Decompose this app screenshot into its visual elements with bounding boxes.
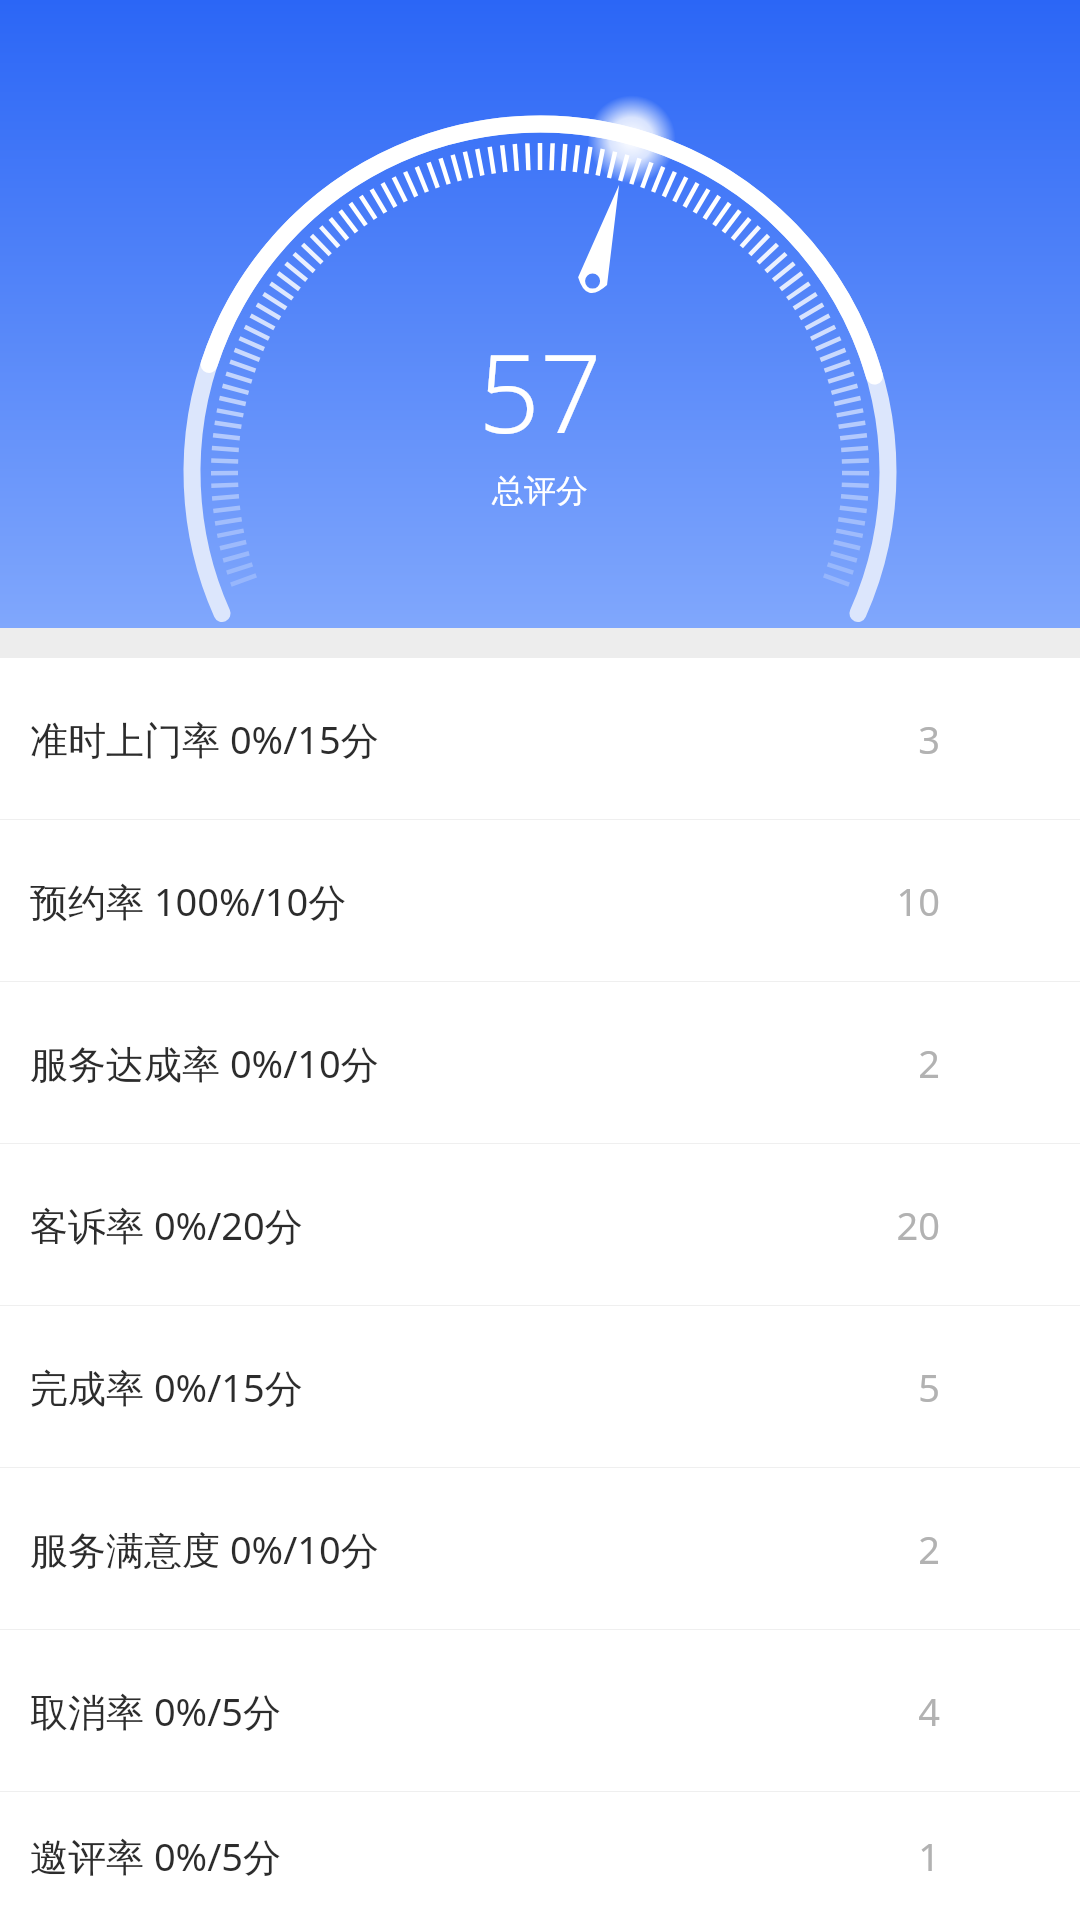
button[interactable]: 服务达成率 0%/10分: [0, 982, 1080, 1143]
button[interactable]: 准时上门率 0%/15分: [0, 658, 1080, 819]
staticText: 服务达成率 0%/10分: [30, 1037, 379, 1089]
staticText: 总评分: [492, 471, 588, 511]
staticText: 2: [918, 1037, 940, 1089]
staticText: 完成率 0%/15分: [30, 1361, 303, 1413]
staticText: 3: [918, 713, 940, 765]
staticText: 2: [918, 1523, 940, 1575]
staticText: 10: [896, 875, 940, 927]
button[interactable]: 取消率 0%/5分: [0, 1630, 1080, 1791]
button[interactable]: 预约率 100%/10分: [0, 820, 1080, 981]
staticText: 邀评率 0%/5分: [30, 1830, 282, 1882]
staticText: 20: [896, 1199, 940, 1251]
button[interactable]: 客诉率 0%/20分: [0, 1144, 1080, 1305]
staticText: 客诉率 0%/20分: [30, 1199, 303, 1251]
staticText: 4: [918, 1685, 940, 1737]
button[interactable]: 服务满意度 0%/10分: [0, 1468, 1080, 1629]
staticText: 服务满意度 0%/10分: [30, 1523, 379, 1575]
button[interactable]: 完成率 0%/15分: [0, 1306, 1080, 1467]
staticText: 预约率 100%/10分: [30, 875, 347, 927]
button[interactable]: 邀评率 0%/5分: [0, 1792, 1080, 1920]
staticText: 57: [478, 318, 602, 465]
staticText: 1: [918, 1830, 940, 1882]
staticText: 取消率 0%/5分: [30, 1685, 282, 1737]
staticText: 5: [918, 1361, 940, 1413]
staticText: 准时上门率 0%/15分: [30, 713, 379, 765]
